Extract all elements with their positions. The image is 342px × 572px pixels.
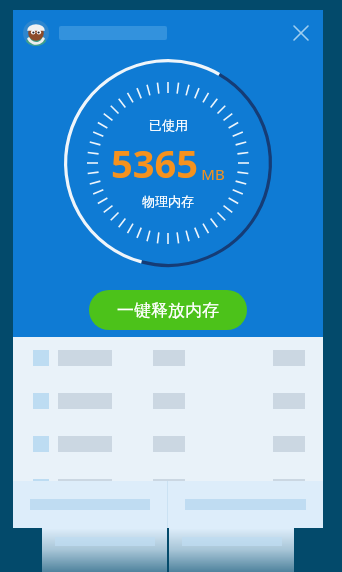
button[interactable] <box>13 433 323 455</box>
button[interactable] <box>13 481 167 528</box>
button[interactable]: Close <box>287 19 315 47</box>
staticText: 物理内存 <box>142 193 194 209</box>
staticText: 一键释放内存 <box>117 300 219 321</box>
button[interactable] <box>13 347 323 369</box>
staticText: 5365 <box>111 137 198 189</box>
staticText: 已使用 <box>149 117 188 133</box>
button[interactable]: App icon <box>23 20 49 46</box>
button[interactable]: 一键释放内存 <box>89 290 247 330</box>
staticText: MB <box>201 164 225 184</box>
button[interactable] <box>13 476 323 498</box>
button[interactable] <box>13 390 323 412</box>
button[interactable] <box>168 481 323 528</box>
